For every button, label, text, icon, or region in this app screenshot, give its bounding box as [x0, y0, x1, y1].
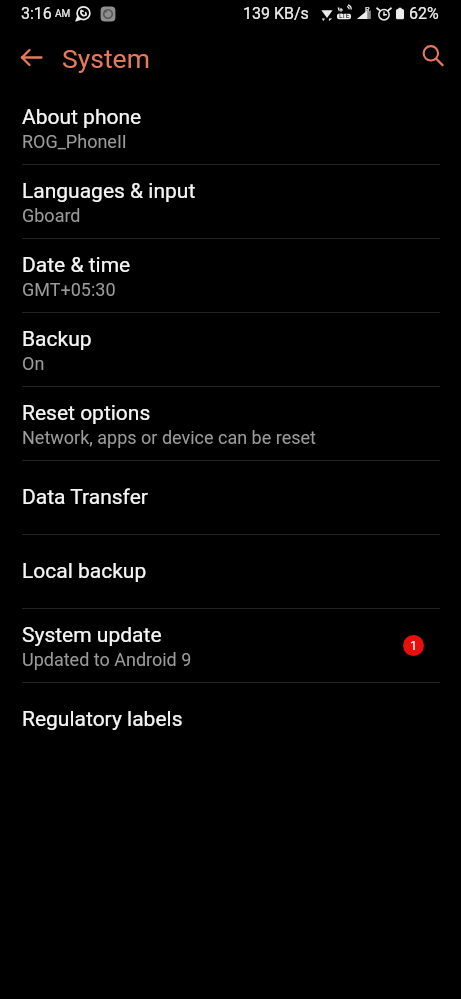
staticText: Date & time	[22, 253, 131, 278]
button[interactable]: About phone	[0, 91, 461, 164]
staticText: ROG_PhoneII	[22, 131, 127, 152]
button[interactable]: Back	[10, 36, 52, 78]
staticText: Updated to Android 9	[22, 649, 192, 670]
staticText: AM	[55, 8, 71, 20]
staticText: R	[365, 5, 370, 14]
staticText: Data Transfer	[22, 485, 148, 510]
button[interactable]: Local backup	[0, 535, 461, 608]
staticText: Network, apps or device can be reset	[22, 427, 316, 448]
staticText: GMT+05:30	[22, 279, 116, 300]
button[interactable]: Backup	[0, 313, 461, 386]
staticText: Gboard	[22, 205, 81, 226]
staticText: Languages & input	[22, 179, 196, 204]
staticText: System	[62, 43, 150, 74]
staticText: System update	[22, 623, 162, 648]
button[interactable]: Date & time	[0, 239, 461, 312]
staticText: Backup	[22, 327, 92, 352]
staticText: About phone	[22, 105, 142, 130]
button[interactable]: Regulatory labels	[0, 683, 461, 756]
button[interactable]: Search	[412, 35, 454, 77]
staticText: LTE	[339, 12, 350, 20]
button[interactable]: Reset options	[0, 387, 461, 460]
staticText: 1	[410, 639, 417, 653]
button[interactable]: Languages & input	[0, 165, 461, 238]
button[interactable]: System update	[0, 609, 461, 682]
staticText: 139 KB/s	[243, 4, 309, 23]
staticText: Local backup	[22, 559, 147, 584]
staticText: On	[22, 353, 45, 374]
staticText: 3:16	[21, 4, 52, 23]
staticText: Reset options	[22, 401, 151, 426]
staticText: 62%	[409, 4, 439, 23]
staticText: Regulatory labels	[22, 707, 183, 732]
button[interactable]: Data Transfer	[0, 461, 461, 534]
